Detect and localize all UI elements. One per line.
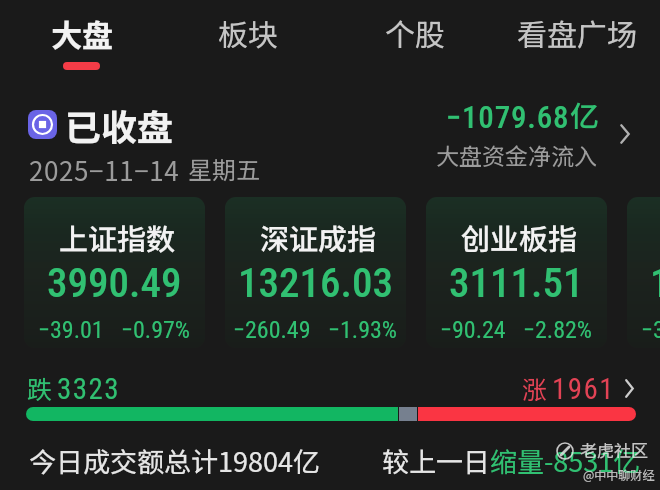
staticText: 已收盘 — [65, 99, 174, 151]
staticText: 星期五 — [188, 151, 260, 186]
staticText: 创业板指 — [461, 216, 578, 258]
staticText: 3990.49 — [47, 259, 182, 307]
staticText: −1079.68 — [446, 99, 570, 135]
button[interactable]: 大盘 — [40, 6, 123, 74]
staticText: −1.93% — [328, 316, 398, 344]
button[interactable]: 看盘广场 — [505, 6, 649, 74]
staticText: 较上一日 — [382, 441, 490, 480]
staticText: 大盘资金净流入 — [436, 138, 597, 171]
staticText: −90.24 — [440, 316, 506, 344]
staticText: 亿 — [570, 93, 600, 135]
staticText: 涨 — [522, 370, 548, 406]
button[interactable]: 深证成指 — [225, 197, 406, 348]
button[interactable]: −1079.68 — [424, 94, 640, 176]
staticText: −0.97% — [121, 316, 191, 344]
staticText: 深证成指 — [260, 216, 377, 258]
staticText: 缩量-8531亿 — [490, 441, 641, 480]
staticText: −2.82% — [523, 316, 593, 344]
staticText: 3323 — [57, 372, 120, 406]
other: More — [624, 378, 635, 399]
staticText: 大盘 — [51, 11, 113, 56]
staticText: 看盘广场 — [517, 11, 637, 54]
staticText: 13216.03 — [238, 259, 393, 307]
staticText: 1961 — [552, 372, 615, 406]
button[interactable]: 跌 — [24, 370, 638, 425]
staticText: 跌 — [27, 370, 53, 406]
staticText: −35.12 — [641, 316, 660, 344]
staticText: 今日成交额总计19804亿 — [29, 441, 320, 480]
button[interactable]: 科创50 — [627, 197, 660, 348]
staticText: 上证指数 — [59, 216, 176, 258]
button[interactable]: 已收盘 — [24, 98, 284, 188]
button[interactable]: 个股 — [374, 6, 455, 74]
staticText: 3111.51 — [449, 259, 584, 307]
staticText: 2025−11−14 — [29, 151, 180, 189]
staticText: 1249.33 — [650, 259, 660, 307]
staticText: 板块 — [218, 11, 278, 54]
other: More — [619, 123, 631, 145]
button[interactable]: 上证指数 — [24, 197, 205, 348]
staticText: 个股 — [385, 11, 445, 54]
staticText: −260.49 — [233, 316, 311, 344]
staticText: 老虎社区 — [580, 437, 648, 462]
button[interactable]: 板块 — [207, 6, 288, 74]
staticText: @中中聊财经 — [583, 466, 655, 483]
staticText: −39.01 — [38, 316, 104, 344]
button[interactable]: 创业板指 — [426, 197, 607, 348]
